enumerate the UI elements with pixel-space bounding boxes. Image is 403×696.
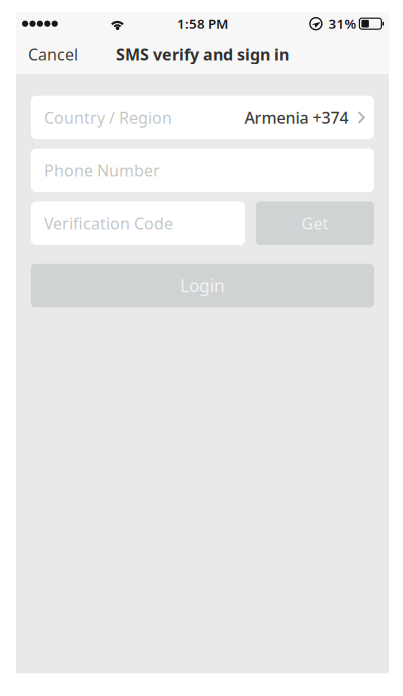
button[interactable]: Phone Number [31, 149, 374, 192]
button[interactable]: Login [31, 264, 374, 307]
button[interactable]: Get [256, 201, 374, 245]
staticText: 31% [328, 15, 356, 32]
button[interactable]: Cancel [16, 36, 88, 73]
staticText: SMS verify and sign in [116, 44, 289, 65]
staticText: Login [180, 274, 225, 297]
staticText: 1:58 PM [177, 15, 228, 32]
staticText: Verification Code [44, 213, 173, 234]
staticText: Armenia +374 [244, 107, 348, 128]
staticText: Phone Number [44, 160, 160, 181]
button[interactable]: Country / Region [31, 96, 374, 139]
staticText: Country / Region [44, 107, 172, 128]
button[interactable]: Verification Code [31, 201, 245, 245]
staticText: Cancel [28, 44, 78, 65]
staticText: Get [301, 213, 328, 234]
